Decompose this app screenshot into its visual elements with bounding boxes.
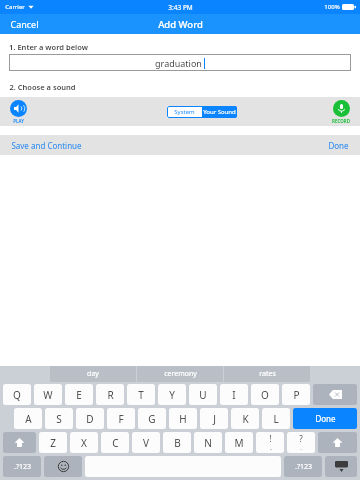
button[interactable]: J — [200, 408, 228, 429]
button[interactable]: ceremony — [137, 366, 223, 382]
staticText: Done — [328, 140, 349, 151]
staticText: ! — [269, 433, 272, 444]
button[interactable]: Y — [158, 384, 186, 405]
button[interactable]: System — [167, 106, 202, 118]
staticText: L — [273, 412, 279, 426]
staticText: Add Word — [158, 18, 203, 31]
staticText: U — [199, 388, 207, 402]
button[interactable]: R — [96, 384, 124, 405]
staticText: Carrier — [5, 3, 25, 11]
staticText: 3:43 PM — [168, 3, 193, 12]
staticText: A — [25, 412, 32, 426]
button[interactable]: F — [107, 408, 135, 429]
staticText: T — [138, 388, 144, 402]
staticText: K — [242, 412, 249, 426]
button[interactable]: Emoji — [44, 456, 82, 477]
button[interactable]: Backspace — [313, 384, 357, 405]
button[interactable]: B — [163, 432, 191, 453]
button[interactable]: H — [169, 408, 197, 429]
staticText: O — [261, 388, 269, 402]
staticText: X — [81, 436, 87, 450]
staticText: 100% — [324, 3, 340, 11]
button[interactable]: L — [262, 408, 290, 429]
staticText: Cancel — [10, 18, 39, 30]
button[interactable]: C — [101, 432, 129, 453]
button[interactable]: K — [231, 408, 259, 429]
staticText: , — [270, 444, 272, 452]
button[interactable]: ? — [287, 432, 315, 453]
button[interactable]: .?123 — [284, 456, 322, 477]
button[interactable]: Done — [317, 135, 360, 155]
button[interactable]: .?123 — [3, 456, 41, 477]
staticText: ? — [299, 433, 303, 444]
staticText: .?123 — [295, 462, 312, 472]
button[interactable]: W — [34, 384, 62, 405]
staticText: System — [174, 108, 195, 116]
staticText: R — [107, 388, 114, 402]
staticText: D — [86, 412, 94, 426]
staticText: N — [204, 436, 212, 450]
button[interactable]: Done — [293, 408, 357, 429]
button[interactable]: U — [189, 384, 217, 405]
button[interactable]: Save and Continue — [0, 135, 93, 155]
staticText: J — [213, 412, 216, 426]
button[interactable]: G — [138, 408, 166, 429]
staticText: Z — [50, 436, 56, 450]
button[interactable]: Cancel — [0, 14, 49, 34]
button[interactable]: N — [194, 432, 222, 453]
button[interactable]: V — [132, 432, 160, 453]
button[interactable]: D — [76, 408, 104, 429]
staticText: V — [143, 436, 149, 450]
button[interactable]: Shift — [3, 432, 36, 453]
button[interactable]: Shift — [318, 432, 357, 453]
button[interactable]: O — [251, 384, 279, 405]
staticText: PLAY — [13, 118, 24, 124]
button[interactable]: rates — [224, 366, 310, 382]
staticText: 2. Choose a sound — [9, 82, 76, 92]
button[interactable]: T — [127, 384, 155, 405]
button[interactable]: graduation — [9, 54, 351, 71]
staticText: ceremony — [164, 369, 197, 379]
staticText: 1. Enter a word below — [9, 42, 88, 52]
button[interactable]: day — [50, 366, 136, 382]
button[interactable]: Record — [332, 100, 350, 124]
button[interactable]: M — [225, 432, 253, 453]
staticText: G — [148, 412, 156, 426]
staticText: W — [43, 388, 53, 402]
staticText: E — [76, 388, 82, 402]
button[interactable]: Z — [39, 432, 67, 453]
staticText: .?123 — [14, 462, 31, 472]
staticText: Your Sound — [203, 108, 236, 116]
staticText: rates — [259, 369, 276, 379]
staticText: Done — [315, 413, 336, 424]
button[interactable]: A — [14, 408, 42, 429]
button[interactable]: Your Sound — [202, 106, 237, 118]
button[interactable]: E — [65, 384, 93, 405]
staticText: . — [300, 444, 302, 452]
staticText: M — [234, 436, 244, 450]
button[interactable]: Q — [3, 384, 31, 405]
staticText: RECORD — [332, 118, 350, 124]
staticText: H — [179, 412, 187, 426]
staticText: day — [87, 369, 99, 379]
staticText: Q — [13, 388, 21, 402]
staticText: S — [56, 412, 62, 426]
button[interactable]: ! — [256, 432, 284, 453]
staticText: Save and Continue — [11, 140, 82, 151]
staticText: B — [174, 436, 181, 450]
button[interactable]: X — [70, 432, 98, 453]
button[interactable]: Hide keyboard — [325, 456, 357, 477]
staticText: graduation — [155, 57, 202, 69]
staticText: C — [112, 436, 119, 450]
button[interactable]: Play — [10, 100, 27, 124]
button[interactable]: I — [220, 384, 248, 405]
staticText: Y — [169, 388, 175, 402]
staticText: F — [118, 412, 124, 426]
button[interactable]: P — [282, 384, 310, 405]
button[interactable]: S — [45, 408, 73, 429]
staticText: P — [293, 388, 300, 402]
staticText: I — [232, 388, 236, 402]
